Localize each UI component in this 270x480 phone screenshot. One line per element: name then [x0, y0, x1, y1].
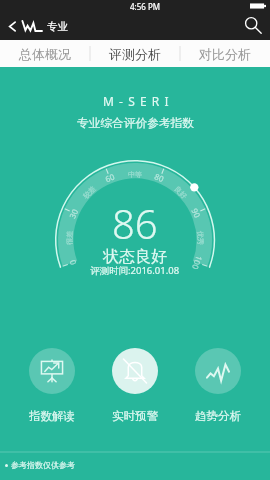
staticText: 90: [189, 206, 204, 220]
button[interactable]: Search: [238, 12, 270, 40]
button[interactable]: 对比分析: [180, 40, 270, 67]
staticText: 4:56 PM: [130, 1, 161, 12]
staticText: 实时预警: [112, 409, 158, 423]
staticText: 中等: [128, 170, 142, 179]
staticText: 60: [103, 170, 117, 184]
staticText: 86: [112, 196, 158, 250]
staticText: 总体概况: [19, 46, 71, 62]
staticText: 较差: [81, 184, 97, 200]
staticText: 对比分析: [199, 46, 251, 62]
staticText: 参考指数仅供参考: [11, 460, 75, 470]
staticText: 状态良好: [103, 247, 167, 267]
staticText: 优秀: [196, 231, 205, 245]
button[interactable]: Back: [3, 17, 21, 35]
staticText: 30: [66, 206, 80, 220]
staticText: 80: [153, 170, 166, 184]
staticText: 良好: [172, 184, 189, 200]
staticText: M-SERI: [103, 93, 174, 109]
staticText: 指数解读: [29, 409, 75, 423]
staticText: 评测时间:2016.01.08: [90, 264, 180, 277]
staticText: 100: [190, 254, 205, 271]
button[interactable]: 指数解读: [29, 348, 75, 423]
staticText: 专业: [47, 20, 68, 33]
staticText: 专业综合评价参考指数: [77, 116, 194, 131]
button[interactable]: 实时预警: [112, 348, 158, 423]
staticText: 趋势分析: [195, 409, 241, 423]
button[interactable]: 总体概况: [0, 40, 90, 67]
staticText: 0: [66, 258, 78, 267]
button[interactable]: 评测分析: [90, 40, 180, 67]
button[interactable]: 趋势分析: [195, 348, 241, 423]
staticText: 很差: [65, 231, 74, 245]
staticText: 评测分析: [109, 46, 161, 62]
